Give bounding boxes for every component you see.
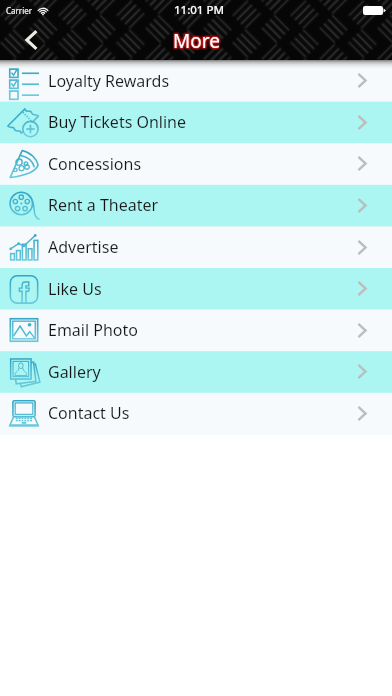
staticText: Gallery — [48, 361, 101, 383]
staticText: More — [175, 26, 222, 52]
staticText: More — [174, 29, 221, 55]
staticText: More — [172, 27, 219, 53]
staticText: More — [174, 29, 221, 55]
staticText: More — [174, 30, 221, 56]
staticText: More — [174, 26, 221, 52]
staticText: More — [174, 27, 221, 53]
staticText: More — [172, 29, 219, 55]
staticText: Loyalty Rewards — [48, 70, 170, 92]
staticText: Carrier — [6, 5, 33, 16]
button[interactable]: Rent a Theater — [0, 184, 392, 226]
staticText: More — [172, 28, 219, 54]
button[interactable]: Loyalty Rewards — [0, 60, 392, 101]
button[interactable]: Buy Tickets Online — [0, 101, 392, 143]
staticText: More — [174, 28, 221, 54]
button[interactable]: Contact Us — [0, 392, 392, 434]
staticText: More — [171, 30, 218, 56]
staticText: More — [175, 30, 222, 56]
staticText: More — [172, 30, 219, 56]
staticText: More — [174, 27, 221, 53]
staticText: More — [174, 28, 221, 54]
staticText: More — [175, 27, 222, 53]
staticText: More — [175, 28, 222, 54]
staticText: More — [172, 27, 219, 53]
staticText: More — [174, 27, 221, 53]
staticText: More — [171, 29, 218, 55]
staticText: More — [175, 28, 222, 54]
button[interactable]: Gallery — [0, 351, 392, 392]
staticText: More — [173, 27, 220, 53]
staticText: Advertise — [48, 236, 119, 258]
staticText: More — [171, 28, 218, 54]
staticText: More — [173, 26, 220, 52]
staticText: More — [173, 27, 220, 53]
staticText: Contact Us — [48, 402, 130, 424]
staticText: More — [172, 27, 219, 53]
staticText: More — [175, 29, 222, 55]
staticText: More — [173, 29, 220, 55]
staticText: More — [171, 26, 218, 52]
staticText: More — [174, 28, 221, 54]
staticText: More — [172, 28, 219, 54]
staticText: More — [171, 27, 218, 53]
staticText: More — [173, 29, 220, 55]
button[interactable]: Back — [10, 20, 50, 60]
staticText: More — [173, 30, 220, 56]
staticText: More — [173, 27, 220, 53]
staticText: More — [174, 27, 221, 53]
staticText: More — [172, 29, 219, 55]
staticText: Rent a Theater — [48, 194, 159, 216]
button[interactable]: Like Us — [0, 268, 392, 309]
staticText: Email Photo — [48, 319, 138, 341]
staticText: Like Us — [48, 278, 102, 300]
staticText: More — [174, 29, 221, 55]
staticText: More — [172, 27, 219, 53]
staticText: More — [173, 27, 220, 53]
staticText: More — [172, 28, 219, 54]
staticText: More — [172, 26, 219, 52]
staticText: Concessions — [48, 153, 142, 175]
button[interactable]: Advertise — [0, 226, 392, 268]
staticText: More — [173, 28, 220, 54]
staticText: More — [174, 29, 221, 55]
staticText: Buy Tickets Online — [48, 111, 187, 133]
staticText: More — [173, 30, 220, 56]
button[interactable]: Concessions — [0, 143, 392, 184]
staticText: More — [173, 29, 220, 55]
staticText: More — [172, 28, 219, 54]
staticText: 11:01 PM — [174, 2, 225, 18]
button[interactable]: Email Photo — [0, 309, 392, 351]
staticText: More — [172, 29, 219, 55]
staticText: More — [172, 29, 219, 55]
